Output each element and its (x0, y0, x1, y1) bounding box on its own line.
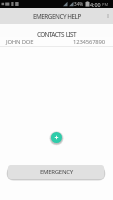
button[interactable]: EMERGENCY (8, 165, 104, 179)
staticText: 34% (74, 1, 84, 7)
staticText: EMERGENCY (40, 168, 73, 176)
button[interactable]: Add contact (51, 132, 62, 143)
staticText: CONTACTS LIST (37, 30, 76, 39)
staticText: JOHN DOE (6, 38, 34, 46)
button[interactable]: JOHN DOE (0, 37, 113, 46)
staticText: 1234567890 (73, 38, 105, 46)
staticText: 4:00 (90, 1, 101, 8)
staticText: EMERGENCY HELP (33, 12, 81, 21)
button[interactable]: More options (103, 11, 113, 21)
staticText: PM (102, 2, 109, 7)
